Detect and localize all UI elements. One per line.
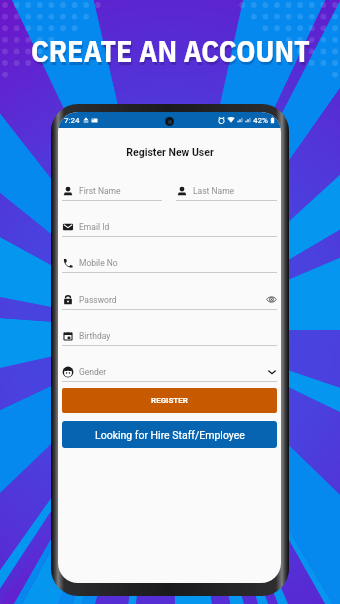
staticText: Register New User xyxy=(126,146,214,158)
staticText: Gender xyxy=(79,367,107,377)
button[interactable]: Looking for Hire Staff/Employee xyxy=(62,421,277,448)
staticText: Mobile No xyxy=(79,258,118,268)
button[interactable]: Last Name xyxy=(176,184,277,201)
staticText: First Name xyxy=(79,186,121,196)
staticText: CREATE AN ACCOUNT xyxy=(32,34,311,73)
other: Show password xyxy=(266,294,277,305)
button[interactable]: Gender xyxy=(62,365,277,382)
button[interactable]: Email Id xyxy=(62,220,277,237)
button[interactable]: Mobile No xyxy=(62,256,277,273)
staticText: 42% xyxy=(253,116,268,125)
button[interactable]: Birthday xyxy=(62,329,277,346)
staticText: Birthday xyxy=(79,331,111,341)
staticText: Password xyxy=(79,295,117,305)
staticText: CREATE AN ACCOUNT xyxy=(31,31,310,70)
button[interactable]: REGISTER xyxy=(62,388,277,413)
other: Select gender xyxy=(267,367,277,377)
staticText: REGISTER xyxy=(151,396,188,405)
button[interactable]: First Name xyxy=(62,184,162,201)
staticText: Looking for Hire Staff/Employee xyxy=(95,429,245,441)
staticText: 7:24 xyxy=(64,116,80,125)
staticText: Last Name xyxy=(193,186,235,196)
button[interactable]: Password xyxy=(62,293,277,310)
staticText: Email Id xyxy=(79,222,110,232)
